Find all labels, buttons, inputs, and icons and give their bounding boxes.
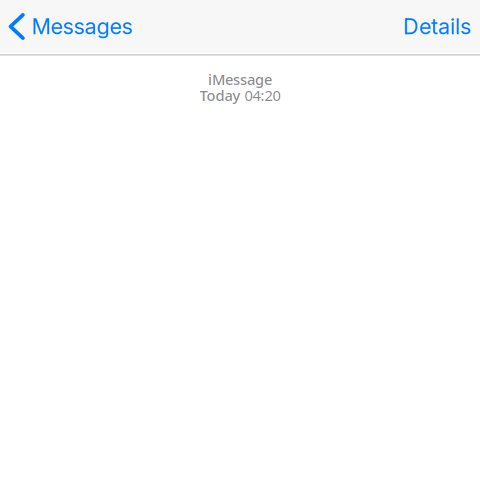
staticText: iMessage [208, 69, 272, 89]
staticText: Messages [31, 13, 132, 39]
button[interactable]: Messages [0, 0, 140, 53]
button[interactable]: Details [391, 0, 480, 53]
staticText: 04:20 [244, 85, 280, 105]
staticText: Today [199, 85, 240, 105]
staticText: Details [403, 13, 471, 39]
